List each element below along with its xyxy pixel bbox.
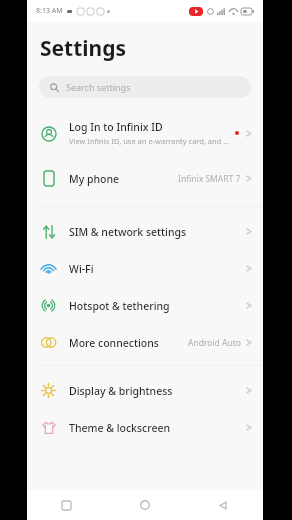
button[interactable]: Hotspot & tethering bbox=[27, 287, 263, 324]
button[interactable]: Theme & lockscreen bbox=[27, 409, 263, 446]
staticText: My phone bbox=[69, 172, 120, 186]
button[interactable]: SIM & network settings bbox=[27, 213, 263, 250]
staticText: Wi-Fi bbox=[69, 262, 94, 276]
staticText: Settings bbox=[40, 34, 127, 63]
staticText: Hotspot & tethering bbox=[69, 299, 170, 313]
staticText: Theme & lockscreen bbox=[69, 421, 171, 435]
staticText: 8:13 AM bbox=[36, 6, 63, 16]
button[interactable]: Display & brightness bbox=[27, 372, 263, 409]
staticText: Log In to Infinix ID bbox=[69, 120, 163, 134]
staticText: Infinix SMART 7 bbox=[178, 173, 241, 185]
staticText: More connections bbox=[69, 336, 159, 350]
button[interactable]: Recent apps bbox=[27, 490, 105, 520]
button[interactable]: More connections bbox=[27, 324, 263, 361]
button[interactable]: Search settings bbox=[39, 76, 251, 98]
button[interactable]: Back bbox=[184, 490, 263, 520]
staticText: View Infinix ID, use an e-warranty card,… bbox=[69, 136, 230, 146]
button[interactable]: My phone bbox=[27, 160, 263, 197]
button[interactable]: Home bbox=[105, 490, 184, 520]
staticText: SIM & network settings bbox=[69, 225, 187, 239]
staticText: Display & brightness bbox=[69, 384, 173, 398]
button[interactable]: Log In to Infinix ID bbox=[27, 112, 263, 154]
staticText: Search settings bbox=[66, 81, 131, 93]
staticText: Android Auto bbox=[188, 337, 241, 349]
button[interactable]: Wi-Fi bbox=[27, 250, 263, 287]
